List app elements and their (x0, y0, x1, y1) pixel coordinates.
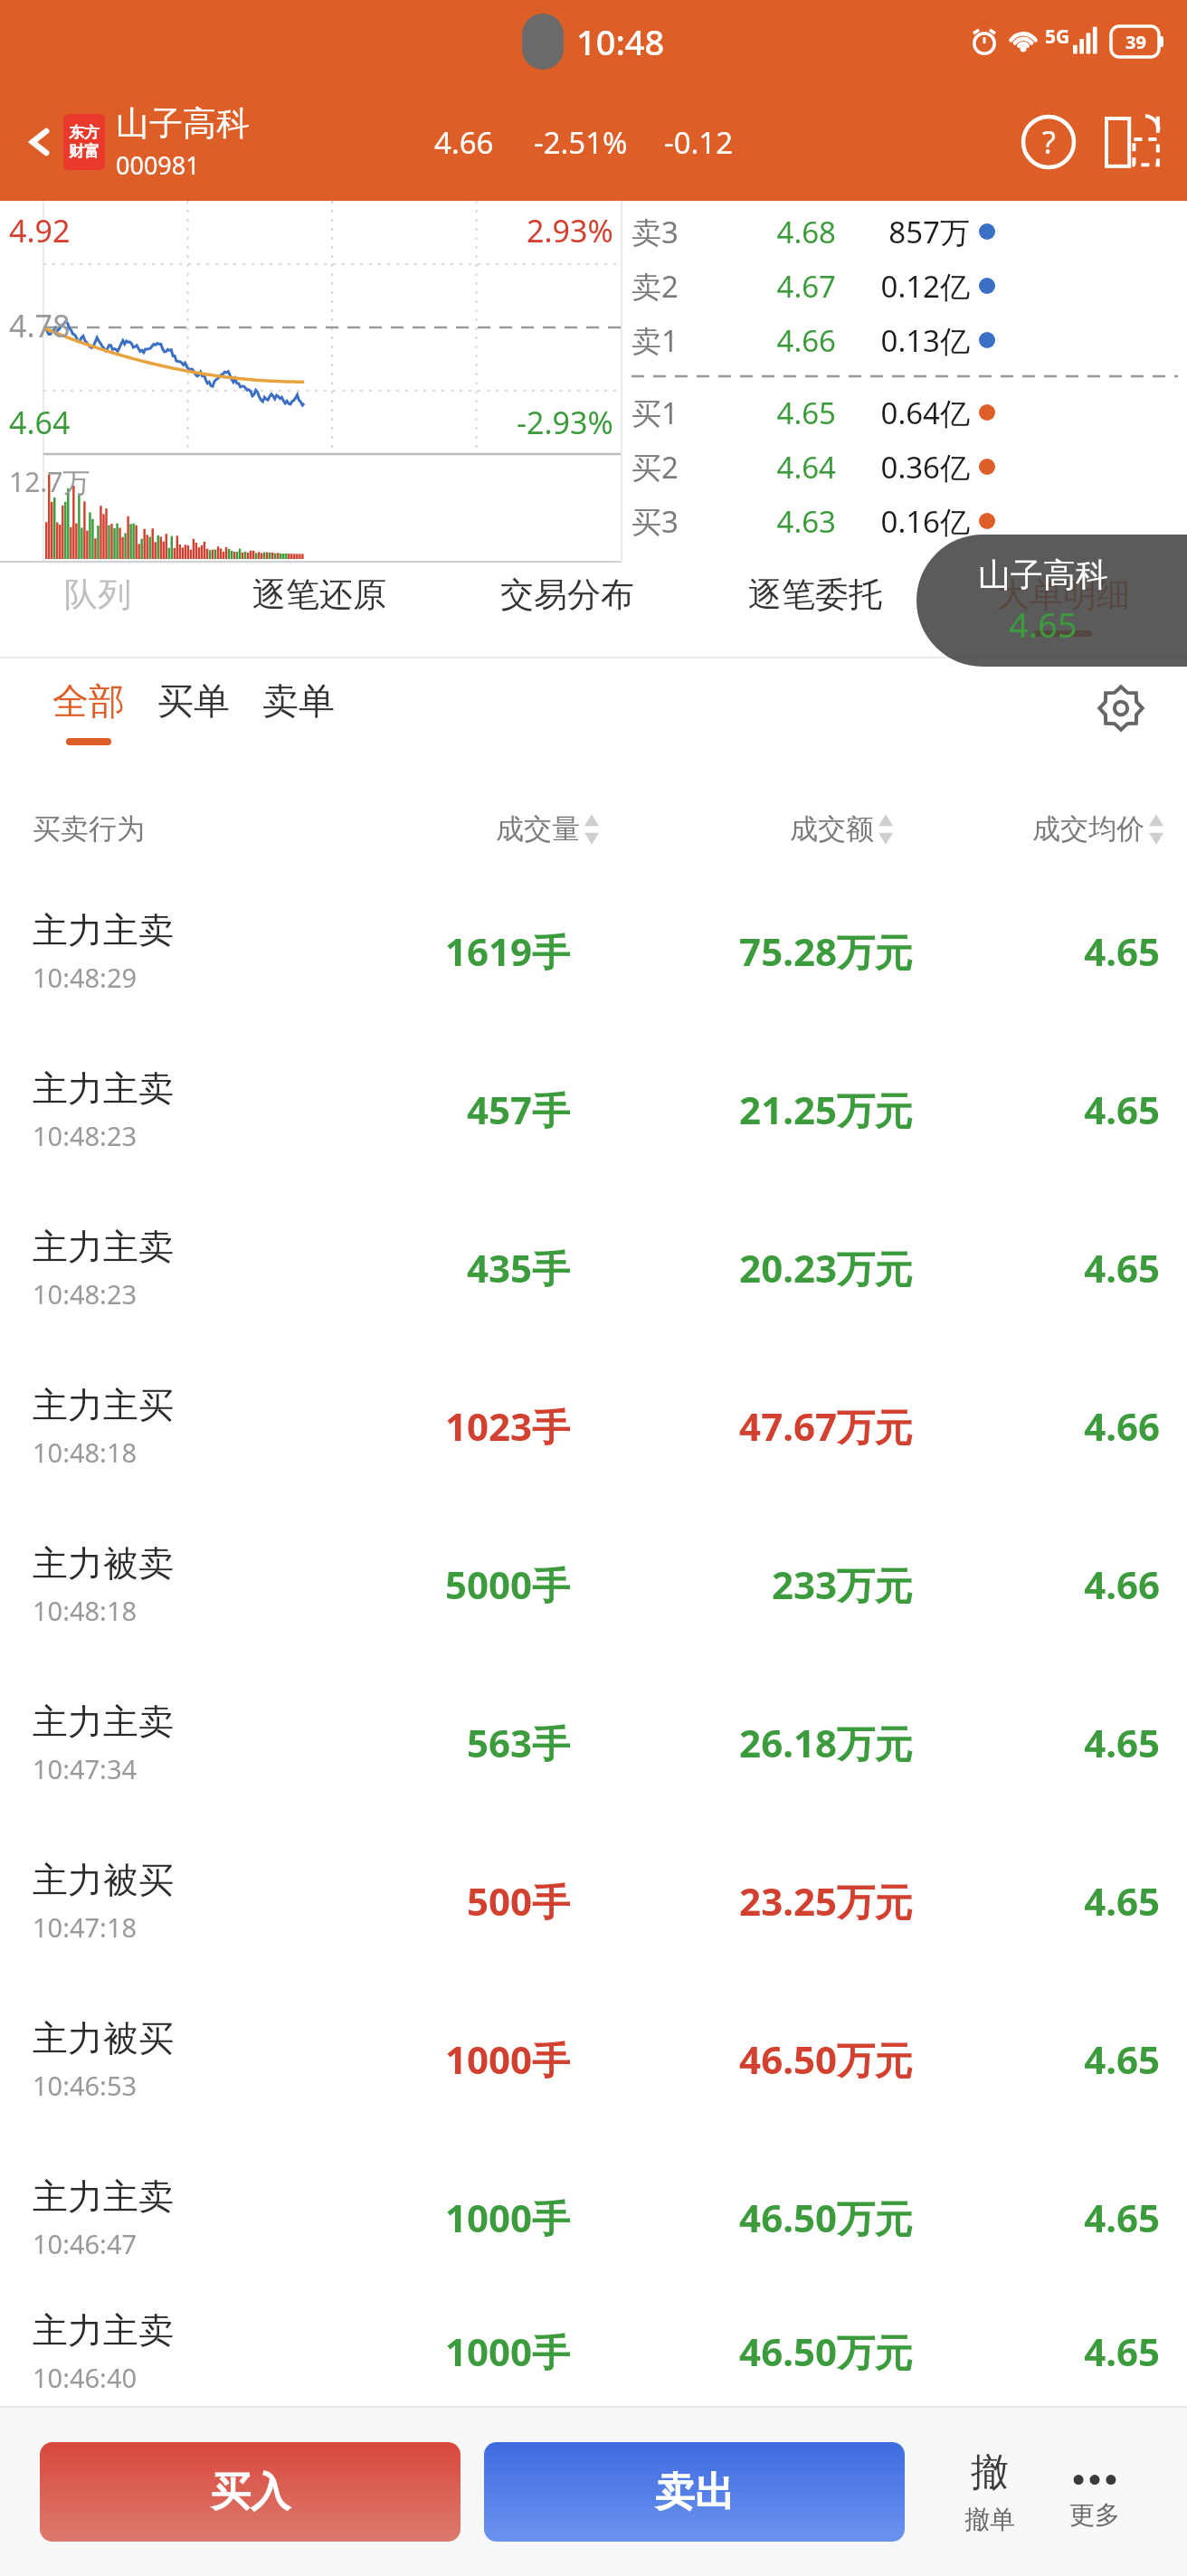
button[interactable]: 买入 (40, 2442, 461, 2542)
staticText: 000981 (116, 148, 200, 182)
staticText: 买卖行为 (33, 811, 304, 847)
staticText: 10:48:23 (33, 1118, 138, 1153)
staticText: 主力主卖 (33, 1700, 174, 1744)
staticText: 10:48 (576, 18, 665, 65)
staticText: 买1 (631, 393, 729, 433)
staticText: 4.66 (729, 320, 836, 361)
button[interactable]: 卖2 (631, 259, 1187, 313)
staticText: 233万元 (583, 1558, 913, 1610)
button[interactable]: 卖3 (631, 204, 1187, 259)
button[interactable]: 主力主卖 (0, 1663, 1187, 1822)
staticText: 4.65 (913, 1875, 1160, 1927)
button[interactable]: 帮助 (1015, 109, 1082, 175)
staticText: 2.93% (527, 210, 613, 251)
staticText: 0.12亿 (836, 266, 970, 307)
button[interactable]: 主力被买 (0, 1980, 1187, 2138)
staticText: 0.36亿 (836, 447, 970, 488)
staticText: 4.68 (729, 212, 836, 252)
staticText: 主力主卖 (33, 2174, 174, 2219)
button[interactable]: 买2 (631, 440, 1187, 494)
staticText: 46.50万元 (583, 2192, 913, 2243)
staticText: 4.65 (913, 1242, 1160, 1293)
staticText: -2.93% (517, 402, 613, 443)
staticText: 财富 (69, 142, 100, 161)
staticText: 主力主卖 (33, 2308, 174, 2353)
button[interactable]: 主力被卖 (0, 1505, 1187, 1663)
staticText: 队列 (64, 573, 131, 616)
button[interactable]: 卖1 (631, 313, 1187, 367)
button[interactable]: 主力主卖 (0, 1030, 1187, 1189)
staticText: 857万 (836, 212, 970, 252)
button[interactable]: 设置 (1091, 678, 1151, 738)
staticText: 21.25万元 (583, 1084, 913, 1135)
staticText: -0.12 (664, 122, 734, 163)
staticText: 4.65 (913, 2033, 1160, 2085)
staticText: 10:46:47 (33, 2226, 138, 2261)
button[interactable]: 多窗口 (1098, 109, 1165, 175)
staticText: 山子高科 (116, 102, 250, 145)
button[interactable]: 返回 (14, 107, 112, 177)
staticText: 成交额 (790, 811, 874, 847)
button[interactable]: 主力主卖 (0, 2138, 1187, 2297)
button[interactable]: 主力主卖 (0, 1189, 1187, 1347)
button[interactable]: 主力主卖 (0, 2297, 1187, 2406)
staticText: 主力被买 (33, 2016, 174, 2060)
staticText: 23.25万元 (583, 1875, 913, 1927)
button[interactable]: 全部 (36, 678, 141, 745)
staticText: 10:48:18 (33, 1593, 138, 1628)
staticText: 全部 (52, 678, 125, 724)
staticText: 卖出 (655, 2467, 735, 2517)
button[interactable]: 主力被买 (0, 1822, 1187, 1980)
staticText: 4.66 (434, 122, 494, 163)
staticText: 山子高科 (978, 554, 1108, 595)
button[interactable]: 成交均价 (893, 811, 1163, 847)
button[interactable]: 买单 (141, 678, 246, 738)
staticText: 卖单 (262, 678, 335, 724)
staticText: 撤 (971, 2448, 1009, 2496)
staticText: 主力主买 (33, 1383, 174, 1427)
staticText: 更多 (1069, 2499, 1120, 2531)
button[interactable]: 交易分布 (443, 563, 691, 658)
staticText: 4.78 (9, 305, 71, 346)
staticText: 4.63 (729, 501, 836, 542)
button[interactable]: 卖出 (484, 2442, 905, 2542)
staticText: 主力主卖 (33, 908, 174, 952)
button[interactable]: 主力主买 (0, 1347, 1187, 1505)
staticText: 4.66 (913, 1558, 1160, 1610)
button[interactable]: 买3 (631, 494, 1187, 548)
staticText: 主力主卖 (33, 1225, 174, 1269)
staticText: 47.67万元 (583, 1400, 913, 1452)
staticText: 1000手 (295, 2325, 570, 2377)
staticText: 20.23万元 (583, 1242, 913, 1293)
staticText: ? (1042, 121, 1056, 163)
button[interactable]: 撤 (937, 2448, 1042, 2535)
staticText: 4.65 (913, 2325, 1160, 2377)
staticText: 75.28万元 (583, 925, 913, 977)
staticText: 46.50万元 (583, 2033, 913, 2085)
staticText: 4.92 (9, 210, 71, 251)
button[interactable]: 逐笔还原 (195, 563, 443, 658)
button[interactable]: 大单明细 (939, 563, 1187, 658)
staticText: 4.64 (9, 402, 71, 443)
button[interactable]: 成交额 (599, 811, 893, 847)
button[interactable]: 更多 (1042, 2454, 1147, 2531)
button[interactable]: 主力主卖 (0, 872, 1187, 1030)
staticText: 4.65 (1009, 601, 1078, 648)
staticText: 10:47:34 (33, 1751, 138, 1786)
button[interactable]: 队列 (0, 563, 195, 658)
button[interactable]: 买1 (631, 385, 1187, 440)
staticText: 4.66 (913, 1400, 1160, 1452)
staticText: 563手 (295, 1717, 570, 1768)
button[interactable]: 卖单 (246, 678, 351, 738)
staticText: 主力主卖 (33, 1066, 174, 1111)
staticText: 卖3 (631, 212, 729, 252)
button[interactable]: 逐笔委托 (691, 563, 939, 658)
staticText: 卖2 (631, 266, 729, 307)
staticText: 10:48:29 (33, 960, 138, 995)
staticText: 大单明细 (996, 573, 1130, 616)
button[interactable]: 成交量 (304, 811, 599, 847)
staticText: 1619手 (295, 925, 570, 977)
staticText: 4.65 (913, 1717, 1160, 1768)
staticText: 成交均价 (1032, 811, 1144, 847)
staticText: 1000手 (295, 2033, 570, 2085)
